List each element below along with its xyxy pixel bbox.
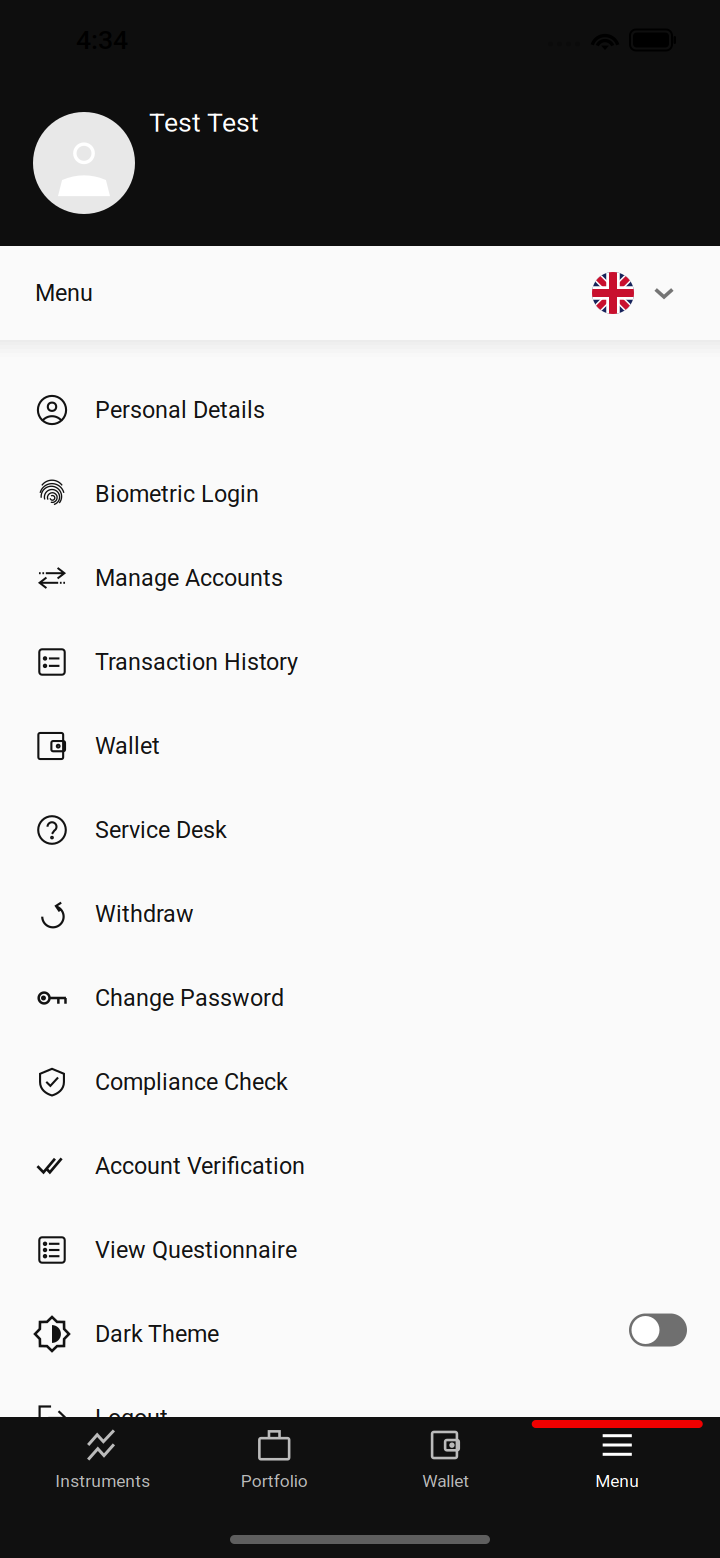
staticText: View Questionnaire <box>95 1236 297 1264</box>
staticText: Test Test <box>149 107 259 138</box>
button[interactable]: Biometric Login <box>0 452 720 536</box>
button[interactable]: Dark Theme <box>0 1292 720 1376</box>
button[interactable]: Wallet <box>0 704 720 788</box>
button[interactable]: Personal Details <box>0 368 720 452</box>
button[interactable]: Withdraw <box>0 872 720 956</box>
button[interactable]: Compliance Check <box>0 1040 720 1124</box>
staticText: Biometric Login <box>95 480 259 508</box>
staticText: Logout <box>95 1404 168 1432</box>
button[interactable]: Change language <box>592 272 720 314</box>
staticText: 4:34 <box>76 24 128 56</box>
button[interactable]: Menu <box>531 1417 703 1517</box>
staticText: Wallet <box>422 1471 469 1491</box>
button[interactable]: Transaction History <box>0 620 720 704</box>
staticText: Personal Details <box>95 396 265 424</box>
staticText: Dark Theme <box>95 1320 219 1348</box>
button[interactable]: View Questionnaire <box>0 1208 720 1292</box>
staticText: Withdraw <box>95 900 194 928</box>
staticText: Portfolio <box>241 1471 308 1491</box>
button[interactable]: Service Desk <box>0 788 720 872</box>
button[interactable]: Change Password <box>0 956 720 1040</box>
button[interactable]: Portfolio <box>188 1417 360 1517</box>
button[interactable]: Logout <box>0 1376 720 1460</box>
staticText: Account Verification <box>95 1152 305 1180</box>
staticText: Instruments <box>55 1471 150 1491</box>
button[interactable]: Wallet <box>360 1417 531 1517</box>
staticText: Wallet <box>95 732 160 760</box>
button[interactable]: Manage Accounts <box>0 536 720 620</box>
staticText: Manage Accounts <box>95 564 283 592</box>
staticText: Service Desk <box>95 816 227 844</box>
staticText: Change Password <box>95 984 284 1012</box>
button[interactable]: Account Verification <box>0 1124 720 1208</box>
staticText: Menu <box>595 1471 639 1491</box>
staticText: Compliance Check <box>95 1068 288 1096</box>
button[interactable]: Instruments <box>17 1417 188 1517</box>
staticText: Menu <box>35 279 93 307</box>
button[interactable]: Profile photo <box>0 112 135 214</box>
staticText: Transaction History <box>95 648 298 676</box>
